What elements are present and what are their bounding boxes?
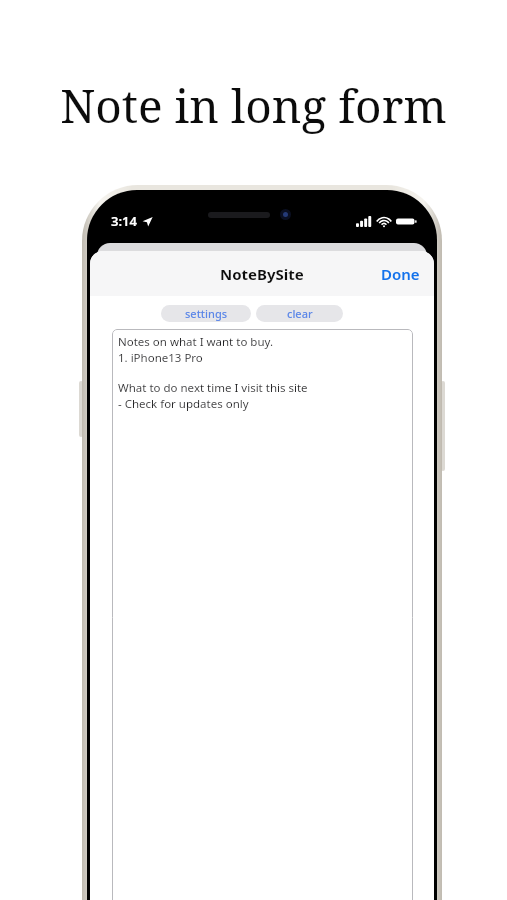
staticText: What to do next time I visit this site	[118, 380, 308, 396]
button[interactable]: Done	[367, 256, 434, 292]
staticText: Notes on what I want to buy.	[118, 334, 274, 350]
staticText: Done	[381, 264, 420, 284]
staticText: NoteBySite	[220, 264, 304, 284]
button[interactable]: Notes on what I want to buy.	[112, 329, 413, 900]
button[interactable]: clear	[256, 305, 343, 322]
button[interactable]: settings	[161, 305, 251, 322]
staticText: Note in long form	[0, 74, 507, 137]
staticText: 3:14	[111, 212, 137, 230]
staticText: - Check for updates only	[118, 396, 249, 412]
staticText: 1. iPhone13 Pro	[118, 350, 203, 366]
staticText: clear	[287, 306, 313, 321]
staticText: settings	[185, 306, 228, 321]
